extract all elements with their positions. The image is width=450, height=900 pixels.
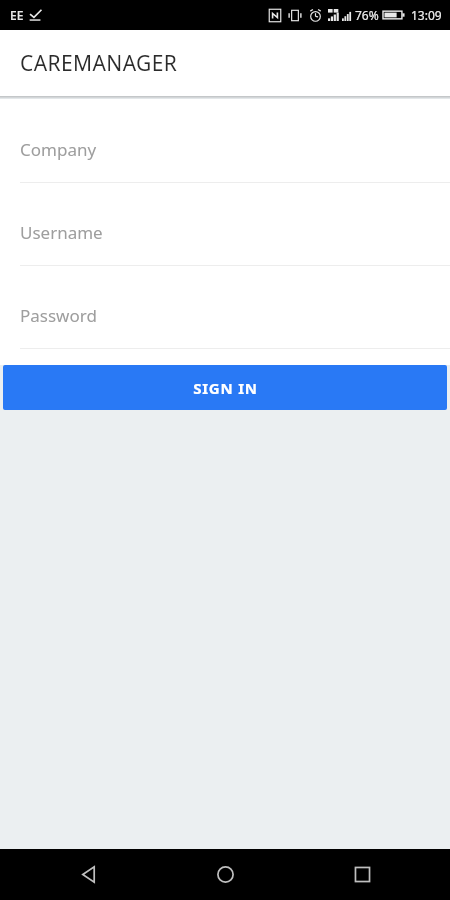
button[interactable]: SIGN IN xyxy=(3,365,447,410)
button[interactable]: Recent apps xyxy=(313,849,411,900)
staticText: SIGN IN xyxy=(193,378,258,398)
staticText: 13:09 xyxy=(411,7,442,23)
staticText: Username xyxy=(20,221,103,244)
staticText: 76% xyxy=(355,7,379,23)
button[interactable]: Home xyxy=(176,849,274,900)
staticText: Company xyxy=(20,138,97,161)
button[interactable]: Company xyxy=(0,116,450,199)
button[interactable]: Back xyxy=(39,849,137,900)
button[interactable]: Username xyxy=(0,199,450,282)
staticText: Password xyxy=(20,304,97,327)
button[interactable]: Password xyxy=(0,282,450,365)
staticText: CAREMANAGER xyxy=(20,49,178,78)
staticText: EE xyxy=(10,7,24,23)
